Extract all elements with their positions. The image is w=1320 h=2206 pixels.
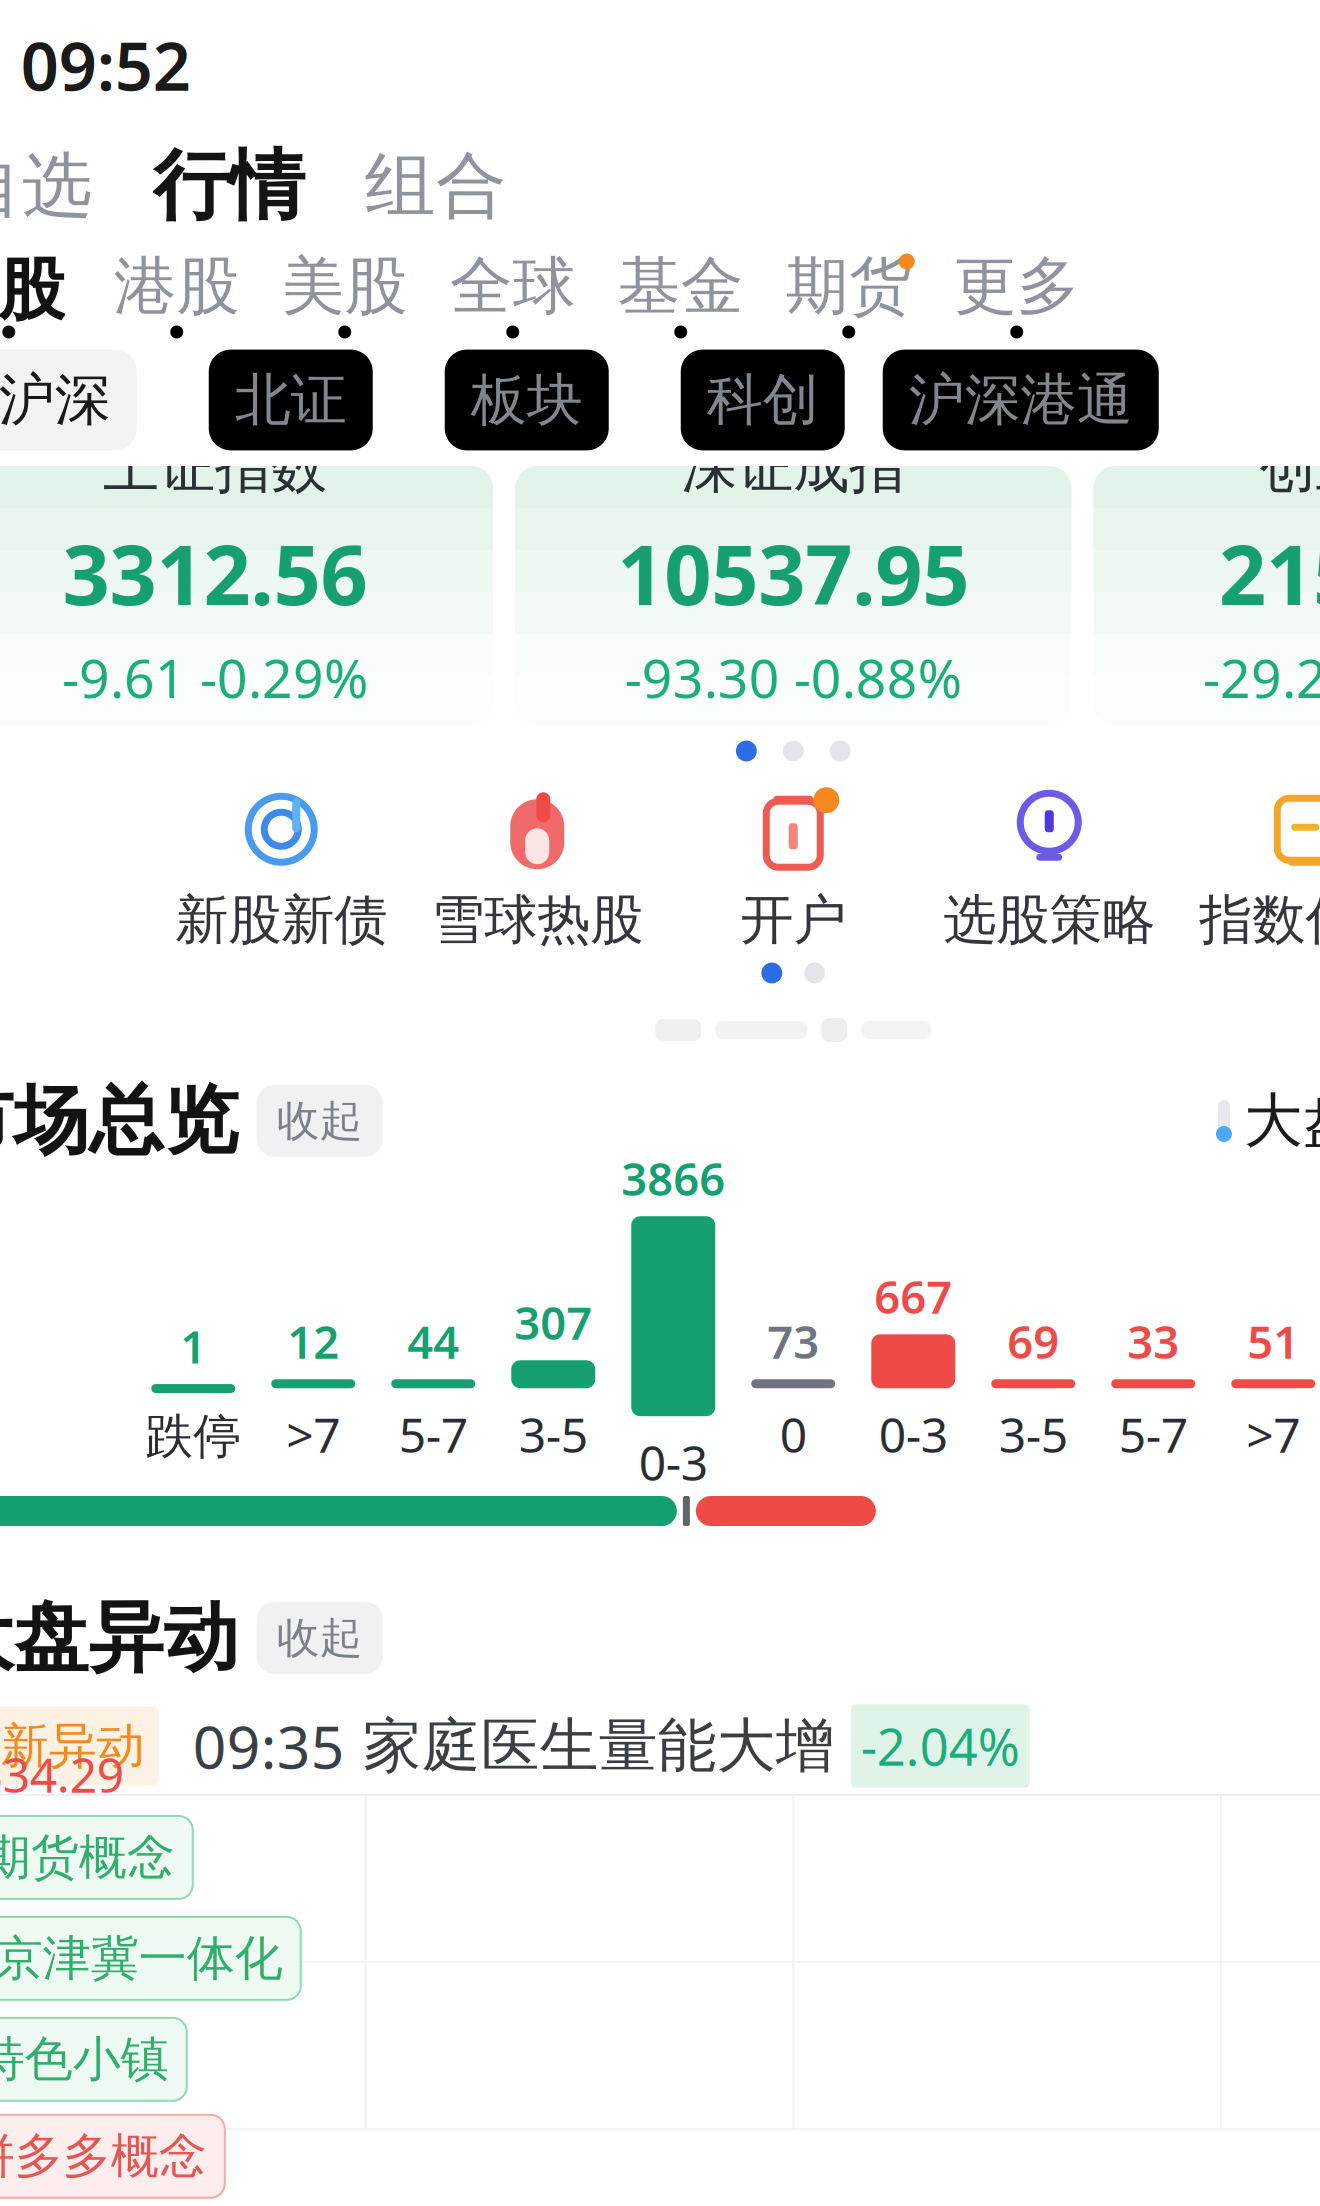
staticText: 大盘热度 (1244, 1085, 1320, 1157)
button[interactable]: 京津冀一体化 (0, 1917, 301, 2000)
staticText: -29.24 -1.34% (1203, 642, 1320, 713)
staticText: 09:35 (193, 1707, 345, 1785)
button[interactable]: 最新异动 (0, 1698, 1320, 1794)
staticText: 美股 (282, 248, 408, 325)
button[interactable]: 行情 (137, 125, 321, 247)
button[interactable]: 自选 (0, 129, 109, 243)
button[interactable]: 组合 (349, 129, 523, 243)
staticText: 5-7 (1119, 1402, 1188, 1466)
button[interactable]: 板块 (409, 363, 645, 437)
staticText: >7 (286, 1402, 340, 1466)
button[interactable]: 开户 (665, 790, 921, 950)
button[interactable]: 沪深 (0, 363, 173, 437)
staticText: 基金 (618, 248, 744, 325)
button[interactable]: 更多 (933, 248, 1101, 344)
staticText: 特色小镇 (0, 2030, 169, 2089)
staticText: 全球 (450, 248, 576, 325)
staticText: >7 (1246, 1402, 1300, 1466)
button[interactable]: 新股新债 (153, 790, 409, 950)
button[interactable]: 拼多多概念 (0, 2115, 225, 2198)
button[interactable]: 港股 (93, 248, 261, 344)
button[interactable]: 雪球热股 (409, 790, 665, 950)
staticText: 大盘异动 (0, 1592, 239, 1684)
staticText: 跌停 (145, 1407, 241, 1466)
staticText: 科创 (707, 366, 819, 434)
staticText: 市场总览 (0, 1075, 239, 1167)
staticText: 港股 (114, 248, 240, 325)
staticText: A股 (0, 242, 65, 331)
staticText: 板块 (471, 366, 583, 434)
staticText: 5-7 (399, 1402, 468, 1466)
staticText: 北证 (235, 366, 347, 434)
staticText: 307 (514, 1292, 592, 1352)
staticText: 期货 (786, 248, 912, 325)
staticText: 沪深 (0, 366, 111, 434)
staticText: 3-5 (519, 1402, 588, 1466)
staticText: 自选 (0, 143, 93, 229)
staticText: 3866 (621, 1148, 725, 1208)
staticText: 73 (767, 1311, 819, 1371)
button[interactable]: 期货概念 (0, 1816, 193, 1899)
staticText: 选股策略 (943, 887, 1155, 953)
button[interactable]: 美股 (261, 248, 429, 344)
staticText: -2.04% (861, 1712, 1020, 1780)
staticText: 沪深港通 (909, 366, 1133, 434)
button[interactable]: 北证 (173, 363, 409, 437)
staticText: 1 (180, 1316, 206, 1376)
staticText: 667 (874, 1266, 952, 1326)
staticText: 最新异动 (0, 1716, 145, 1775)
staticText: 收起 (277, 1612, 363, 1664)
staticText: 行情 (153, 139, 305, 233)
staticText: 0-3 (639, 1430, 708, 1494)
staticText: 京津冀一体化 (0, 1929, 283, 1988)
button[interactable]: 创业板指 (1093, 466, 1320, 726)
button[interactable]: 特色小镇 (0, 2018, 187, 2101)
staticText: 33 (1127, 1311, 1179, 1371)
staticText: 组合 (365, 143, 507, 229)
staticText: -93.30 -0.88% (625, 642, 962, 713)
staticText: 3-5 (999, 1402, 1068, 1466)
staticText: -9.61 -0.29% (62, 642, 368, 713)
staticText: 新股新债 (175, 887, 387, 953)
staticText: 期货概念 (0, 1828, 175, 1887)
staticText: 51 (1247, 1311, 1299, 1371)
button[interactable]: 指数估值 (1177, 790, 1320, 950)
staticText: 收起 (277, 1095, 363, 1147)
staticText: 10537.95 (617, 518, 969, 628)
button[interactable]: 沪深港通 (881, 363, 1161, 437)
staticText: 09:52 (21, 21, 191, 109)
staticText: 0 (780, 1402, 807, 1466)
staticText: 12 (287, 1311, 339, 1371)
button[interactable]: 选股策略 (921, 790, 1177, 950)
staticText: 开户 (740, 887, 846, 953)
staticText: 更多 (954, 248, 1080, 325)
button[interactable]: A股 (0, 248, 93, 344)
staticText: 44 (407, 1311, 459, 1371)
staticText: 69 (1007, 1311, 1059, 1371)
button[interactable]: 科创 (645, 363, 881, 437)
button[interactable]: 基金 (597, 248, 765, 344)
staticText: 0-3 (879, 1402, 948, 1466)
button[interactable]: 深证成指 (515, 466, 1071, 726)
staticText: 家庭医生量能大增 (363, 1710, 835, 1782)
staticText: 拼多多概念 (0, 2127, 207, 2186)
staticText: 雪球热股 (431, 887, 643, 953)
button[interactable]: 期货 (765, 248, 933, 344)
staticText: 创业板指 (1260, 433, 1320, 502)
staticText: 上证指数 (103, 433, 327, 502)
staticText: 深证成指 (681, 433, 905, 502)
button[interactable]: 上证指数 (0, 466, 493, 726)
staticText: 指数估值 (1199, 887, 1320, 953)
staticText: 3334.29 (0, 1742, 124, 1806)
button[interactable]: 收起 (257, 1085, 383, 1157)
staticText: 2154.64 (1219, 518, 1320, 628)
button[interactable]: 收起 (257, 1602, 383, 1674)
button[interactable]: 大盘热度 (1216, 1082, 1320, 1160)
button[interactable]: 全球 (429, 248, 597, 344)
staticText: 3312.56 (62, 518, 367, 628)
